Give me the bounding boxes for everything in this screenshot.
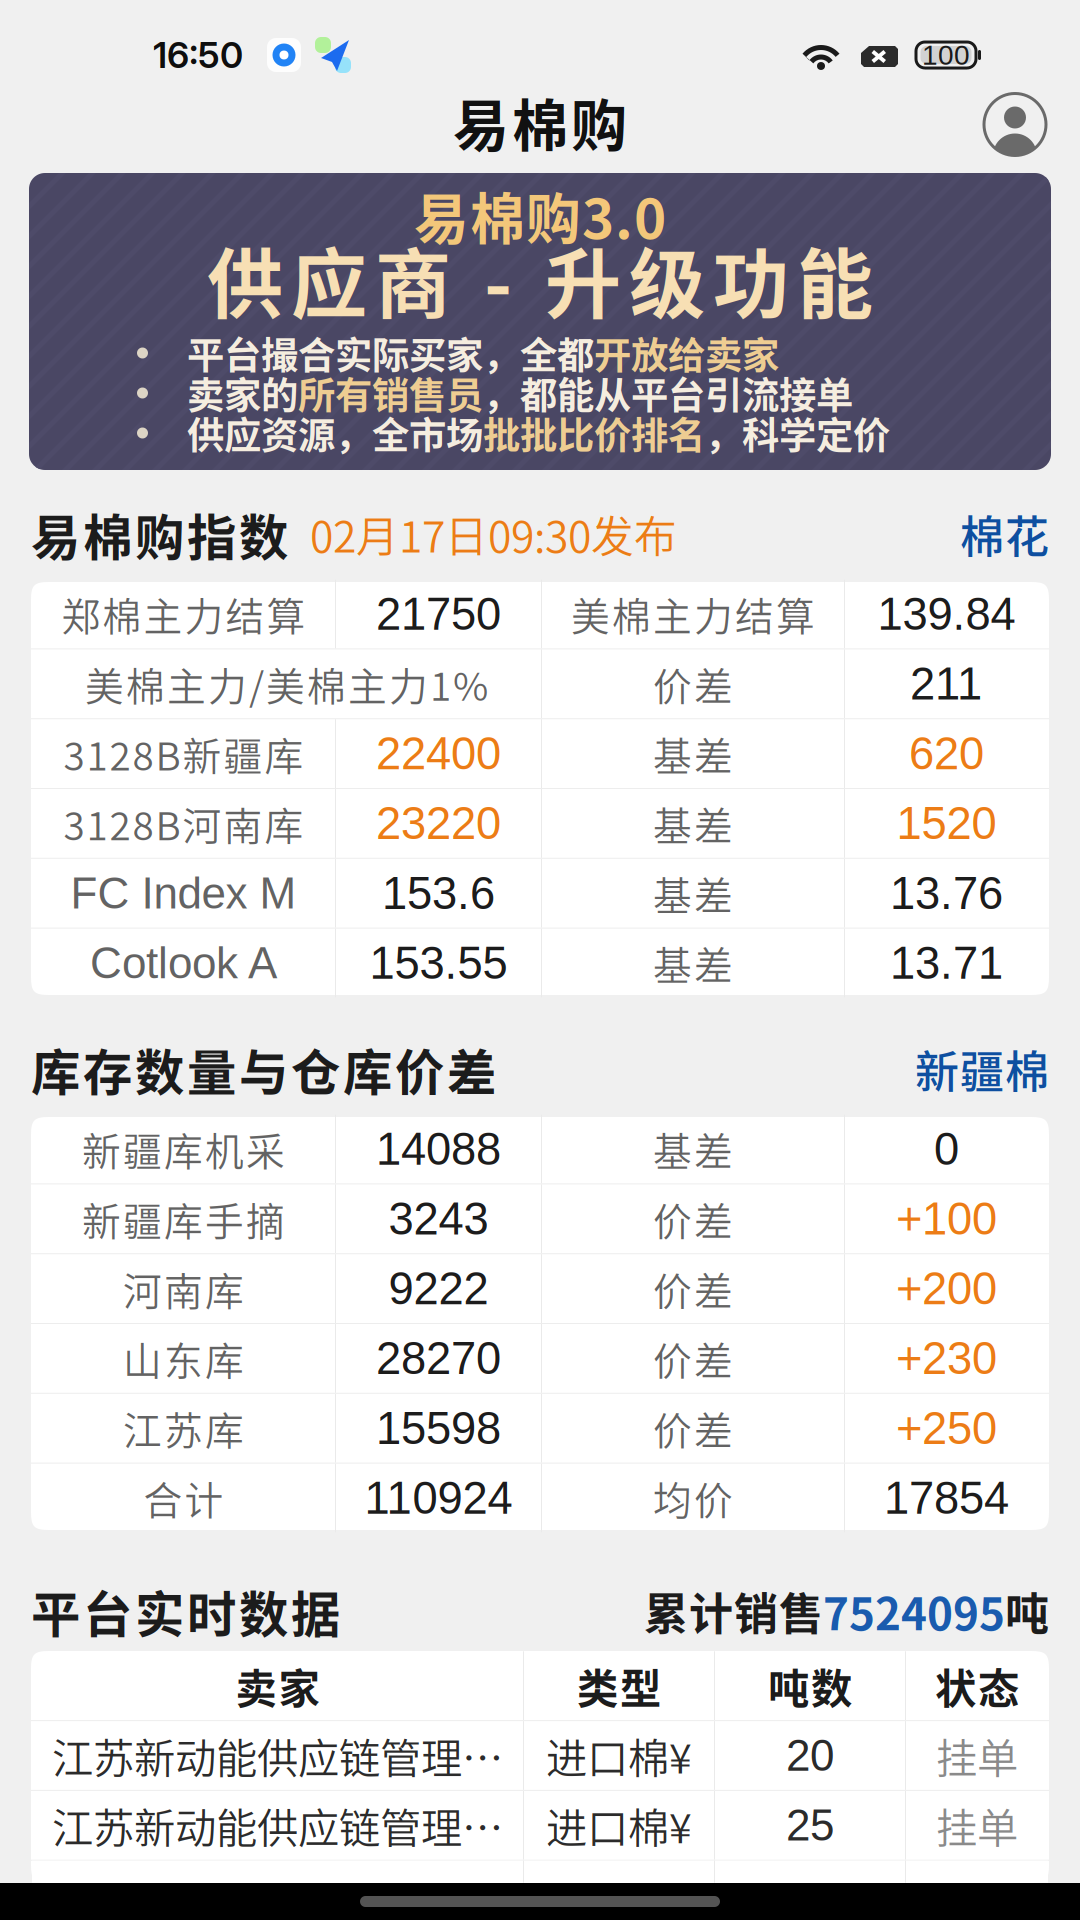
- staticText: 开放给卖家: [594, 326, 779, 380]
- staticText: 所有销售员: [298, 366, 483, 420]
- staticText: 美棉主力结算: [571, 586, 815, 642]
- staticText: 易棉购: [453, 81, 627, 162]
- staticText: +230: [896, 1333, 997, 1384]
- staticText: ，科学定价: [705, 406, 890, 460]
- staticText: 价差: [653, 1261, 733, 1317]
- staticText: 3128B河南库: [63, 795, 303, 851]
- staticText: 16:50: [153, 33, 243, 77]
- staticText: 新疆库手摘: [82, 1191, 285, 1247]
- staticText: 类型: [577, 1656, 661, 1716]
- staticText: 23220: [376, 798, 501, 849]
- staticText: 新疆棉: [915, 1037, 1049, 1101]
- staticText: 110924: [364, 1473, 512, 1523]
- staticText: 进口棉¥: [546, 1726, 692, 1785]
- staticText: 美棉主力/美棉主力1%: [85, 656, 488, 712]
- staticText: 139.84: [877, 589, 1015, 639]
- staticText: 9222: [388, 1263, 488, 1314]
- button[interactable]: Account: [984, 93, 1046, 155]
- staticText: 累计销售: [644, 1579, 823, 1643]
- staticText: 基差: [653, 795, 733, 851]
- staticText: 13.71: [890, 938, 1003, 988]
- staticText: +250: [896, 1403, 997, 1453]
- staticText: 挂单: [936, 1795, 1018, 1855]
- staticText: 平台实时数据: [31, 1575, 340, 1647]
- staticText: 河南库: [123, 1261, 244, 1317]
- staticText: 进口棉¥: [546, 1795, 692, 1855]
- staticText: 新疆库机采: [82, 1121, 285, 1177]
- staticText: 基差: [653, 1121, 733, 1177]
- staticText: 3128B新疆库: [63, 726, 303, 782]
- staticText: 13.76: [890, 868, 1003, 918]
- staticText: ，都能从平台引流接单: [483, 366, 853, 420]
- staticText: 1520: [896, 798, 996, 849]
- staticText: 卖家的: [187, 366, 298, 420]
- staticText: 郑棉主力结算: [61, 586, 305, 642]
- staticText: 江苏库: [123, 1400, 244, 1456]
- staticText: 20: [786, 1731, 834, 1780]
- staticText: 21750: [376, 589, 501, 639]
- staticText: 库存数量与仓库价差: [31, 1033, 496, 1105]
- staticText: 28270: [376, 1333, 501, 1384]
- staticText: 100: [922, 39, 970, 71]
- staticText: 吨: [1005, 1579, 1049, 1643]
- staticText: 14088: [376, 1124, 501, 1174]
- staticText: 25: [786, 1801, 834, 1850]
- staticText: 211: [910, 658, 983, 709]
- staticText: 平台撮合实际买家，全都: [187, 326, 594, 380]
- staticText: 7524095: [823, 1579, 1005, 1643]
- staticText: +100: [896, 1193, 997, 1244]
- staticText: 15598: [376, 1403, 501, 1453]
- staticText: 价差: [653, 1400, 733, 1456]
- staticText: 价差: [653, 656, 733, 712]
- staticText: 批批比价排名: [483, 406, 705, 460]
- staticText: 卖家: [235, 1656, 319, 1716]
- staticText: 均价: [653, 1470, 733, 1526]
- staticText: 易棉购3.0: [414, 175, 666, 255]
- staticText: 棉花: [960, 502, 1049, 566]
- staticText: 易棉购指数: [31, 498, 288, 570]
- staticText: 江苏新动能供应链管理…: [52, 1795, 503, 1855]
- staticText: 22400: [376, 728, 501, 779]
- staticText: 价差: [653, 1330, 733, 1386]
- staticText: 17854: [884, 1473, 1009, 1523]
- staticText: 江苏新动能供应链管理…: [52, 1726, 503, 1785]
- staticText: 合计: [143, 1470, 223, 1526]
- staticText: 供应资源，全市场: [187, 406, 483, 460]
- staticText: 基差: [653, 935, 733, 991]
- staticText: Cotlook A: [90, 938, 277, 988]
- staticText: FC Index M: [70, 869, 296, 918]
- staticText: 3243: [388, 1193, 488, 1244]
- staticText: 价差: [653, 1191, 733, 1247]
- staticText: 153.6: [382, 868, 495, 918]
- button[interactable]: 棉花: [960, 502, 1049, 566]
- staticText: 基差: [653, 865, 733, 921]
- staticText: 吨数: [768, 1656, 852, 1716]
- staticText: +200: [896, 1263, 997, 1314]
- staticText: 153.55: [369, 938, 507, 988]
- staticText: 山东库: [123, 1330, 244, 1386]
- staticText: 状态: [935, 1656, 1019, 1716]
- staticText: 挂单: [936, 1726, 1018, 1785]
- staticText: 620: [909, 728, 984, 779]
- staticText: 供应商 - 升级功能: [207, 224, 873, 334]
- staticText: 02月17日09:30发布: [310, 503, 677, 565]
- staticText: 0: [934, 1124, 959, 1174]
- button[interactable]: 新疆棉: [915, 1037, 1049, 1101]
- staticText: 基差: [653, 726, 733, 782]
